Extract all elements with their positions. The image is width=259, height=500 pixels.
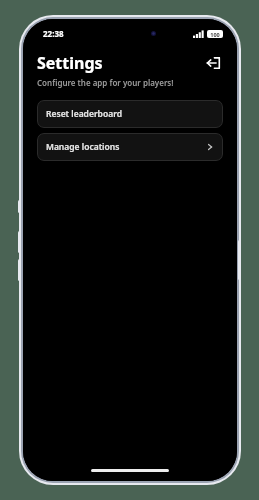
staticText: Configure the app for your players! — [37, 77, 174, 88]
staticText: 100 — [210, 31, 220, 38]
button[interactable]: Log out — [203, 53, 223, 73]
staticText: Manage locations — [46, 141, 120, 153]
staticText: Settings — [37, 52, 103, 74]
button[interactable]: Reset leaderboard — [37, 100, 223, 128]
staticText: Reset leaderboard — [46, 108, 122, 120]
staticText: 22:38 — [43, 28, 64, 39]
button[interactable]: Manage locations — [37, 133, 223, 161]
